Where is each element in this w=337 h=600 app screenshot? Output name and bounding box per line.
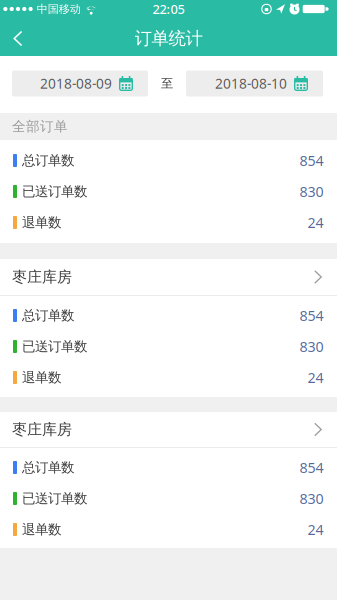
staticText: 已送订单数 xyxy=(22,183,87,200)
staticText: 已送订单数 xyxy=(22,338,87,355)
staticText: 830 xyxy=(299,182,323,201)
staticText: 24 xyxy=(307,520,323,539)
staticText: 2018-08-10 xyxy=(215,74,287,93)
staticText: 22:05 xyxy=(152,0,184,18)
staticText: 订单统计 xyxy=(134,27,202,49)
staticText: 退单数 xyxy=(22,521,61,538)
staticText: 854 xyxy=(299,306,323,325)
staticText: 总订单数 xyxy=(22,307,74,324)
staticText: 854 xyxy=(299,151,323,170)
button[interactable]: 枣庄库房 xyxy=(0,259,337,295)
staticText: 2018-08-09 xyxy=(40,74,112,93)
staticText: 830 xyxy=(299,489,323,508)
button[interactable]: 2018-08-09 xyxy=(12,70,148,96)
staticText: 枣庄库房 xyxy=(12,420,72,439)
staticText: 24 xyxy=(307,213,323,232)
button[interactable]: 枣庄库房 xyxy=(0,412,337,447)
staticText: 830 xyxy=(299,337,323,356)
staticText: 枣庄库房 xyxy=(12,268,72,286)
staticText: 退单数 xyxy=(22,369,61,386)
staticText: 24 xyxy=(307,368,323,387)
staticText: 全部订单 xyxy=(12,118,68,135)
staticText: 至 xyxy=(161,76,173,91)
staticText: 854 xyxy=(299,458,323,477)
staticText: 总订单数 xyxy=(22,459,74,476)
button[interactable]: Back xyxy=(0,19,37,57)
button[interactable]: 2018-08-10 xyxy=(186,70,323,96)
staticText: 中国移动 xyxy=(37,2,81,16)
staticText: 已送订单数 xyxy=(22,490,87,507)
staticText: 总订单数 xyxy=(22,152,74,169)
staticText: 退单数 xyxy=(22,214,61,231)
